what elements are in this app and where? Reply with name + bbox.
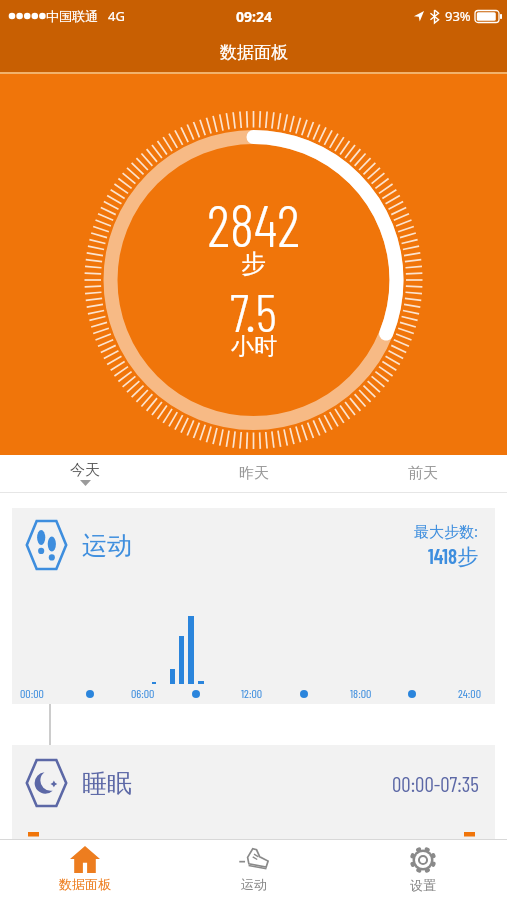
- button[interactable]: 今天: [0, 455, 169, 492]
- staticText: 12:00: [241, 686, 263, 700]
- staticText: 昨天: [239, 464, 269, 483]
- staticText: 前天: [408, 464, 438, 483]
- staticText: 24:00: [458, 686, 481, 700]
- staticText: 中国联通: [46, 8, 98, 24]
- button[interactable]: 昨天: [169, 455, 338, 492]
- staticText: 06:00: [131, 686, 155, 700]
- staticText: 运动: [82, 530, 132, 561]
- staticText: 7.5: [230, 279, 277, 343]
- staticText: 18:00: [350, 686, 372, 700]
- staticText: 运动: [241, 876, 267, 892]
- button[interactable]: 睡眠: [12, 745, 495, 839]
- staticText: 步: [241, 248, 266, 279]
- staticText: 93%: [445, 7, 471, 25]
- staticText: 睡眠: [82, 768, 132, 799]
- button[interactable]: 设置: [338, 840, 507, 900]
- button[interactable]: 运动: [12, 508, 495, 704]
- staticText: 00:00: [20, 686, 44, 700]
- staticText: 09:24: [236, 7, 272, 26]
- staticText: 4G: [108, 7, 125, 25]
- staticText: 今天: [70, 461, 100, 480]
- button[interactable]: 运动: [169, 840, 338, 900]
- staticText: 00:00-07:35: [392, 771, 479, 796]
- staticText: 2842: [207, 189, 300, 259]
- staticText: 数据面板: [220, 42, 288, 63]
- staticText: 数据面板: [59, 876, 111, 892]
- staticText: 1418步: [428, 543, 479, 570]
- staticText: 设置: [410, 877, 436, 893]
- button[interactable]: 数据面板: [0, 840, 169, 900]
- staticText: 小时: [231, 332, 277, 361]
- button[interactable]: 前天: [338, 455, 507, 492]
- staticText: 最大步数:: [414, 521, 479, 541]
